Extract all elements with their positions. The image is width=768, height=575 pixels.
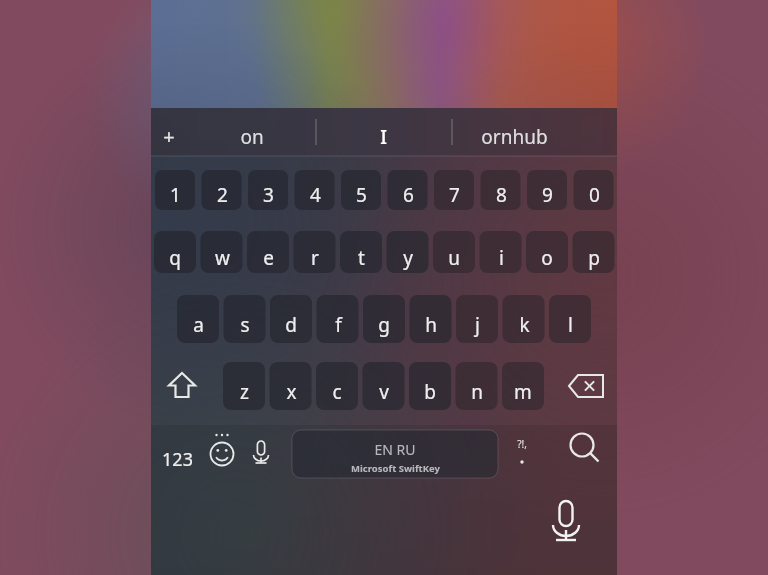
button[interactable] — [224, 295, 266, 343]
button[interactable] — [292, 430, 498, 478]
staticText: o — [541, 245, 553, 271]
staticText: j — [475, 312, 480, 338]
button[interactable] — [549, 295, 591, 343]
staticText: b — [424, 379, 436, 405]
button[interactable] — [295, 170, 335, 210]
button[interactable]: Voice input — [243, 430, 279, 478]
staticText: n — [471, 379, 483, 405]
staticText: Microsoft SwiftKey — [351, 462, 440, 475]
button[interactable] — [155, 170, 195, 210]
staticText: z — [240, 379, 249, 405]
staticText: y — [403, 245, 413, 271]
staticText: 5 — [356, 182, 367, 208]
button[interactable] — [340, 231, 382, 273]
button[interactable] — [503, 430, 543, 478]
staticText: 4 — [310, 182, 321, 208]
staticText: i — [499, 245, 504, 271]
button[interactable] — [316, 108, 452, 156]
staticText: 0 — [589, 182, 600, 208]
staticText: k — [519, 312, 530, 338]
staticText: + — [163, 123, 175, 150]
staticText: v — [379, 379, 389, 405]
button[interactable] — [527, 170, 567, 210]
button[interactable] — [433, 231, 475, 273]
staticText: l — [568, 312, 573, 338]
button[interactable] — [157, 430, 199, 478]
staticText: 2 — [217, 182, 228, 208]
button[interactable] — [202, 170, 242, 210]
staticText: x — [286, 379, 297, 405]
button[interactable] — [154, 231, 196, 273]
button[interactable] — [201, 231, 243, 273]
staticText: s — [240, 312, 250, 338]
button[interactable] — [480, 231, 522, 273]
staticText: g — [378, 312, 390, 338]
button[interactable] — [270, 362, 312, 410]
button[interactable]: Backspace — [563, 362, 609, 410]
button[interactable] — [317, 295, 359, 343]
staticText: q — [169, 245, 181, 271]
button[interactable] — [452, 108, 617, 156]
button[interactable] — [574, 170, 614, 210]
staticText: w — [215, 245, 230, 271]
button[interactable] — [177, 295, 219, 343]
staticText: r — [311, 245, 319, 271]
button[interactable] — [526, 231, 568, 273]
button[interactable] — [316, 362, 358, 410]
button[interactable] — [409, 362, 451, 410]
button[interactable] — [456, 295, 498, 343]
staticText: 123 — [162, 447, 193, 472]
button[interactable] — [223, 362, 265, 410]
button[interactable] — [247, 231, 289, 273]
button[interactable] — [294, 231, 336, 273]
button[interactable] — [503, 295, 545, 343]
staticText: e — [263, 245, 274, 271]
button[interactable]: Add — [151, 108, 175, 156]
button[interactable] — [388, 170, 428, 210]
button[interactable] — [481, 170, 521, 210]
staticText: p — [588, 245, 600, 271]
staticText: t — [358, 245, 365, 271]
staticText: u — [448, 245, 460, 271]
button[interactable] — [363, 295, 405, 343]
button[interactable] — [434, 170, 474, 210]
staticText: 1 — [170, 182, 181, 208]
staticText: ornhub — [481, 124, 548, 150]
staticText: d — [285, 312, 297, 338]
staticText: a — [193, 312, 204, 338]
staticText: 8 — [496, 182, 507, 208]
button[interactable] — [175, 108, 316, 156]
button[interactable] — [270, 295, 312, 343]
staticText: m — [514, 379, 532, 405]
button[interactable] — [363, 362, 405, 410]
staticText: f — [335, 312, 342, 338]
staticText: 7 — [449, 182, 460, 208]
staticText: I — [380, 124, 387, 150]
button[interactable] — [502, 362, 544, 410]
staticText: 9 — [542, 182, 553, 208]
staticText: h — [425, 312, 437, 338]
staticText: on — [240, 124, 264, 150]
button[interactable]: Shift — [159, 362, 205, 410]
button[interactable]: Voice typing — [539, 492, 595, 552]
button[interactable] — [248, 170, 288, 210]
button[interactable]: Emoji — [203, 430, 241, 478]
staticText: c — [332, 379, 342, 405]
button[interactable] — [341, 170, 381, 210]
staticText: EN RU — [374, 440, 416, 459]
button[interactable] — [387, 231, 429, 273]
staticText: 3 — [263, 182, 274, 208]
staticText: 6 — [403, 182, 414, 208]
button[interactable]: Search — [559, 430, 607, 478]
button[interactable] — [410, 295, 452, 343]
button[interactable] — [573, 231, 615, 273]
button[interactable] — [456, 362, 498, 410]
staticText: ?!, — [517, 437, 527, 451]
